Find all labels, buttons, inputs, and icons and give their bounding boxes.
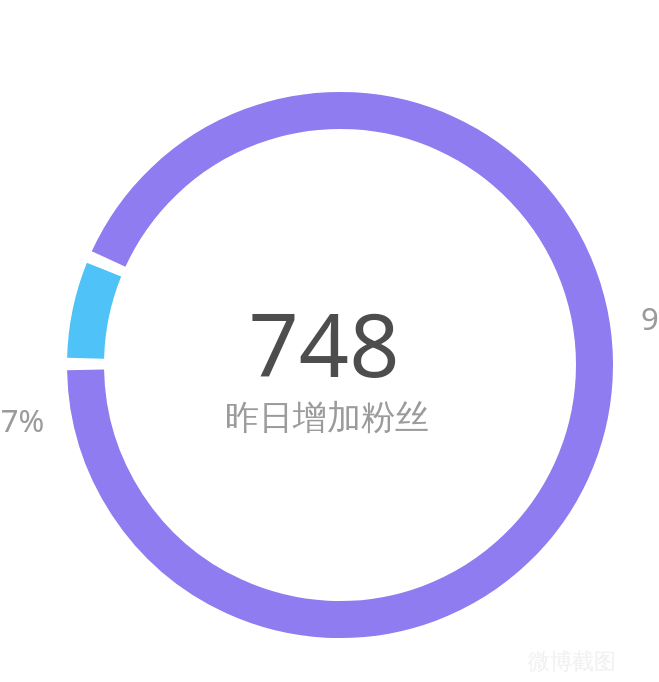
staticText: 微博截图 bbox=[528, 648, 616, 676]
button[interactable]: Fans growth ring chart bbox=[0, 0, 659, 682]
staticText: 748 bbox=[248, 283, 400, 403]
staticText: 67% bbox=[0, 399, 45, 441]
staticText: 昨日增加粉丝 bbox=[225, 396, 429, 439]
staticText: 9 bbox=[641, 297, 659, 339]
